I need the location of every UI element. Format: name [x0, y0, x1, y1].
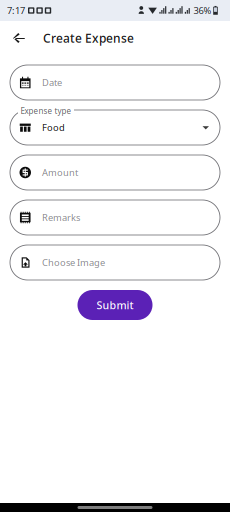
button[interactable]: Choose Image: [10, 245, 220, 280]
staticText: 36%: [193, 4, 211, 17]
button[interactable]: Back: [7, 25, 31, 51]
staticText: Food: [42, 121, 65, 134]
button[interactable]: Food: [10, 110, 220, 145]
staticText: Amount: [42, 166, 78, 179]
staticText: 7:17: [7, 4, 25, 17]
staticText: Choose Image: [42, 256, 105, 269]
button[interactable]: Remarks: [10, 200, 220, 235]
button[interactable]: Submit: [77, 290, 152, 320]
button[interactable]: Date: [10, 65, 220, 100]
staticText: Expense type: [20, 105, 71, 116]
staticText: Date: [42, 76, 62, 89]
button[interactable]: Amount: [10, 155, 220, 190]
staticText: Remarks: [42, 211, 80, 224]
staticText: Create Expense: [43, 30, 134, 46]
staticText: Submit: [96, 298, 133, 312]
